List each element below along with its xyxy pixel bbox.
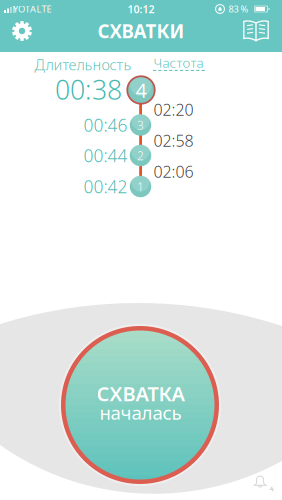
staticText: 83 % (228, 3, 248, 15)
staticText: LTE (36, 3, 51, 15)
staticText: Длительность (34, 55, 131, 74)
staticText: 02:06 (153, 161, 193, 182)
staticText: СХВАТКИ (97, 19, 184, 43)
staticText: 02:20 (153, 99, 193, 120)
staticText: 4 (135, 77, 146, 103)
staticText: 02:58 (153, 130, 193, 151)
button[interactable]: Частота (151, 56, 205, 72)
staticText: СХВАТКА (96, 380, 184, 407)
staticText: Частота (153, 54, 203, 71)
staticText: 00:38 (55, 72, 122, 107)
staticText: 2 (137, 147, 144, 163)
staticText: 10:12 (127, 2, 154, 16)
button[interactable]: СХВАТКА (63, 328, 217, 482)
staticText: 3 (137, 117, 144, 133)
button[interactable]: Settings (7, 16, 37, 46)
staticText: 00:46 (83, 113, 127, 136)
staticText: 1 (137, 178, 144, 194)
staticText: 00:44 (83, 144, 127, 167)
staticText: 00:42 (83, 175, 127, 198)
button[interactable]: Journal (241, 16, 271, 46)
staticText: началась (99, 400, 181, 425)
button[interactable]: Reminders (252, 473, 274, 492)
staticText: YOTA (13, 3, 36, 15)
